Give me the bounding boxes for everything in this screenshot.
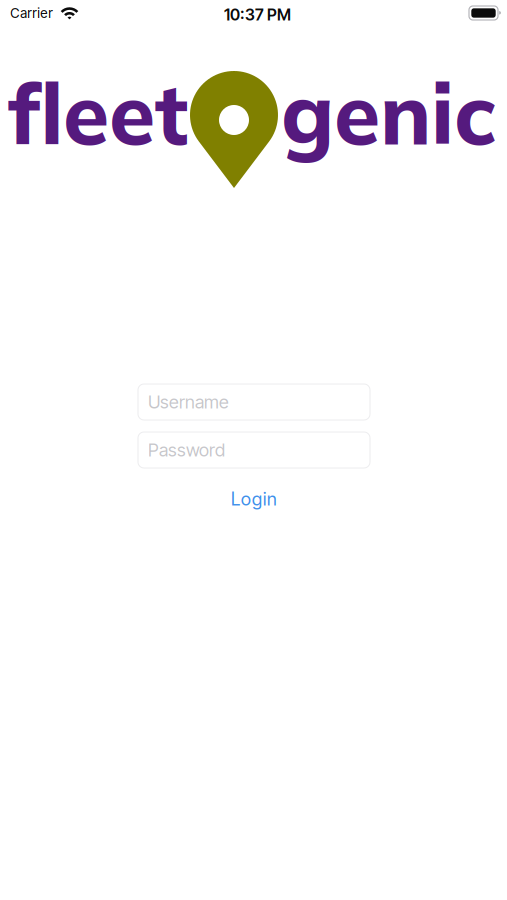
- staticText: 10:37 PM: [224, 5, 291, 24]
- staticText: fleet: [8, 60, 188, 165]
- staticText: Login: [230, 488, 277, 510]
- staticText: Carrier: [10, 5, 53, 21]
- staticText: Username: [148, 391, 229, 413]
- staticText: Password: [148, 439, 225, 461]
- staticText: genic: [281, 60, 497, 165]
- button[interactable]: Login: [138, 482, 370, 516]
